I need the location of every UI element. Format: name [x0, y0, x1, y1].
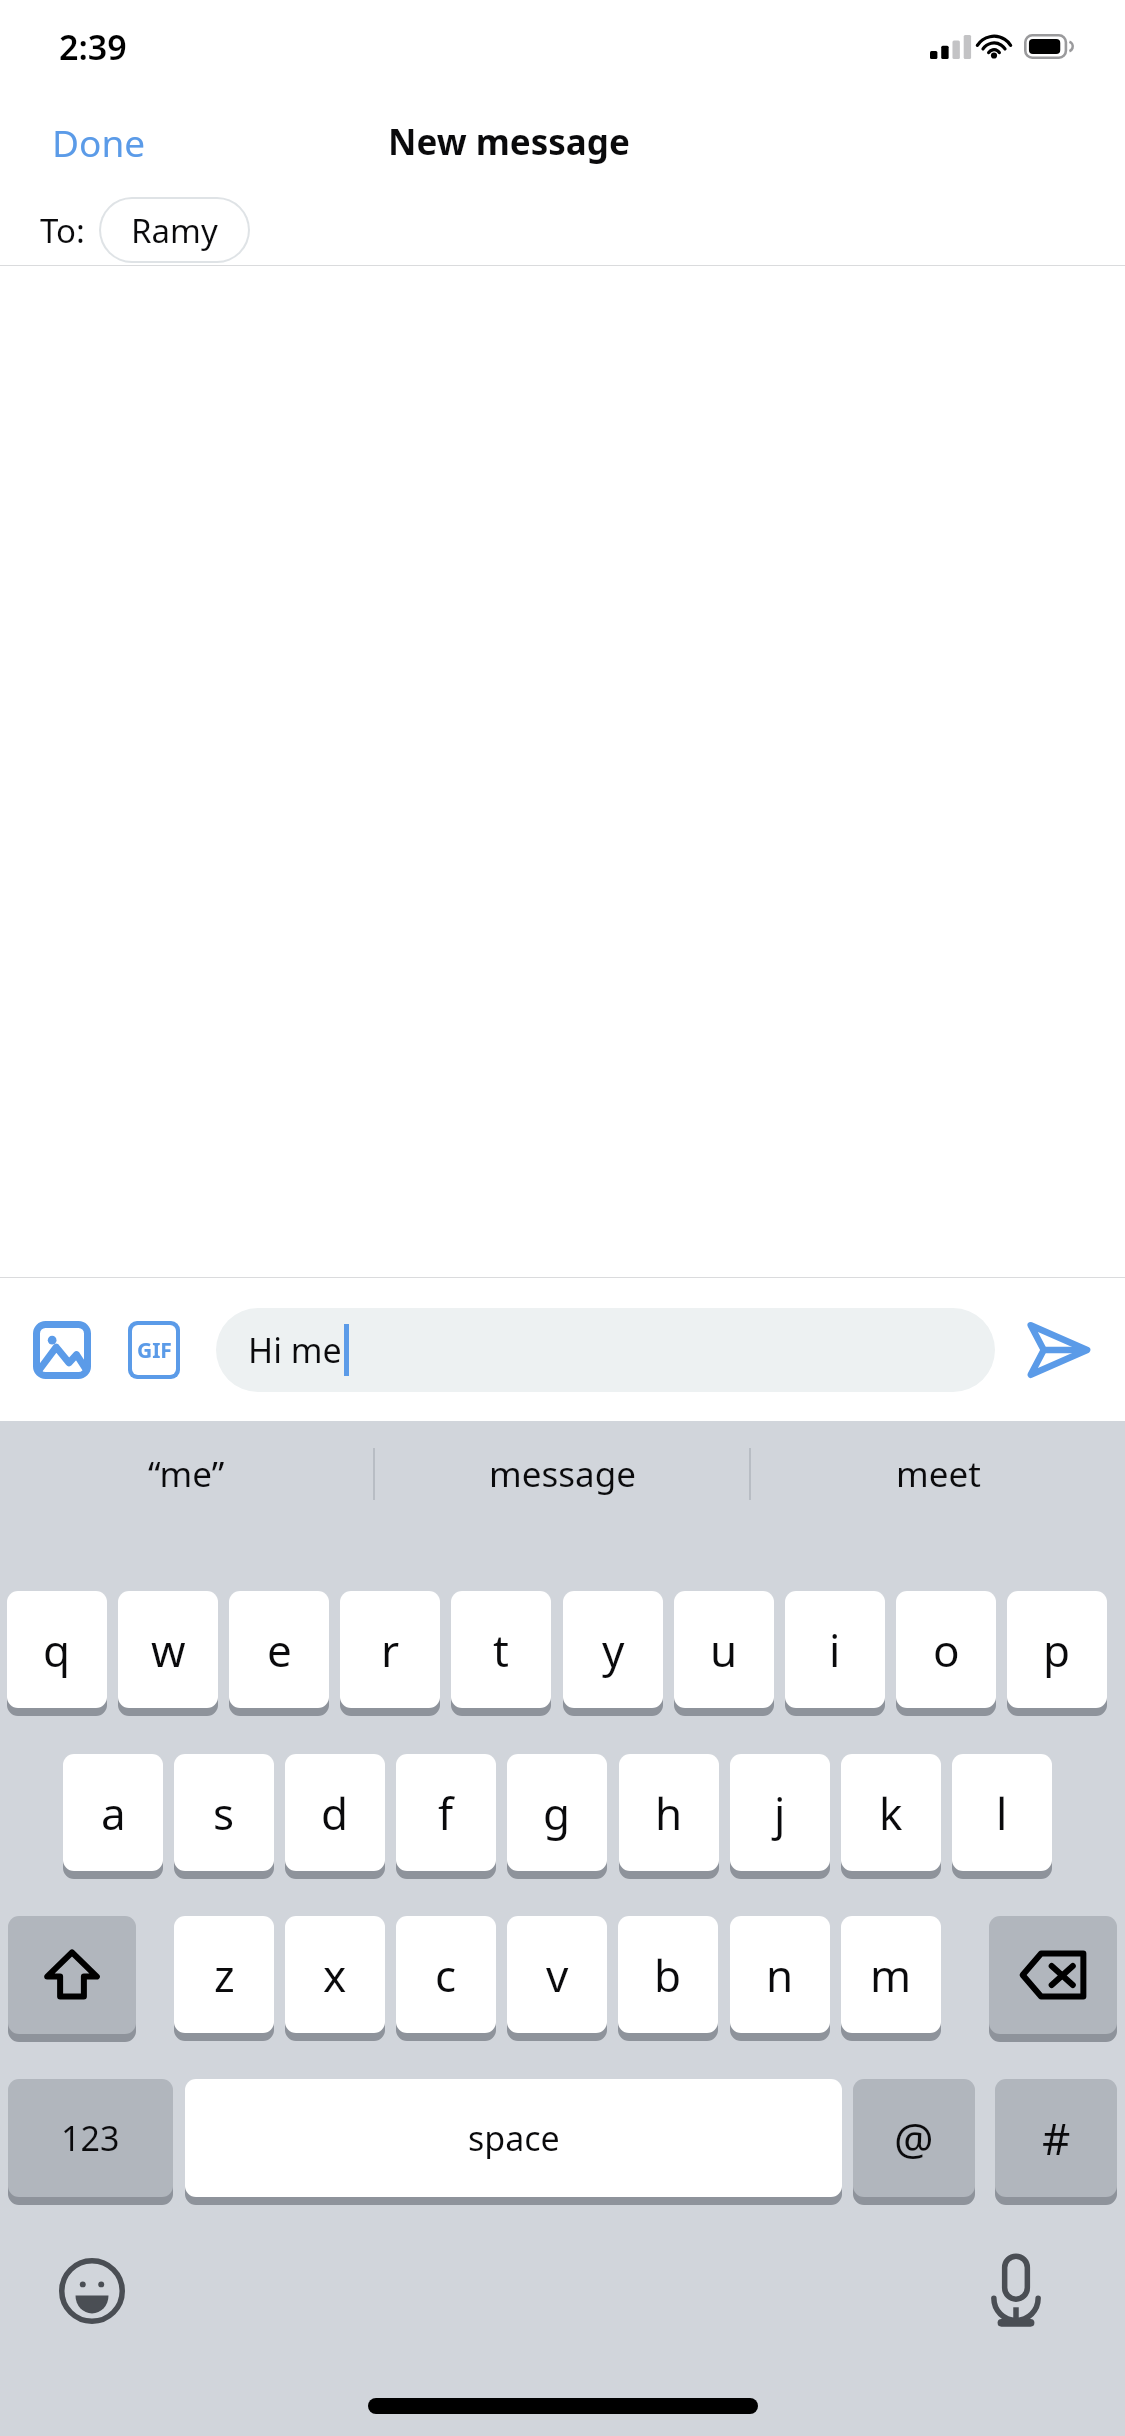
button[interactable]: j: [730, 1754, 830, 1871]
button[interactable]: o: [896, 1591, 996, 1708]
staticText: GIF: [137, 1336, 172, 1365]
button[interactable]: p: [1007, 1591, 1107, 1708]
button[interactable]: #: [995, 2079, 1117, 2197]
button[interactable]: n: [730, 1916, 830, 2033]
button[interactable]: g: [507, 1754, 607, 1871]
staticText: d: [321, 1783, 349, 1843]
button[interactable]: e: [229, 1591, 329, 1708]
button[interactable]: Shift: [8, 1916, 136, 2034]
button[interactable]: k: [841, 1754, 941, 1871]
button[interactable]: Done: [0, 101, 198, 183]
button[interactable]: c: [396, 1916, 496, 2033]
button[interactable]: q: [7, 1591, 107, 1708]
staticText: space: [468, 2115, 560, 2161]
staticText: j: [774, 1783, 786, 1843]
button[interactable]: i: [785, 1591, 885, 1708]
button[interactable]: space: [185, 2079, 842, 2197]
button[interactable]: a: [63, 1754, 163, 1871]
button[interactable]: @: [853, 2079, 975, 2197]
staticText: Hi me: [248, 1327, 342, 1373]
staticText: z: [214, 1945, 235, 2005]
button[interactable]: t: [451, 1591, 551, 1708]
staticText: message: [489, 1450, 636, 1498]
button[interactable]: GIF: [116, 1312, 192, 1388]
staticText: k: [879, 1783, 903, 1843]
staticText: x: [323, 1945, 347, 2005]
button[interactable]: message: [375, 1421, 749, 1526]
staticText: p: [1043, 1620, 1071, 1680]
staticText: v: [546, 1945, 569, 2005]
staticText: New message: [388, 118, 630, 166]
staticText: h: [655, 1783, 683, 1843]
staticText: Ramy: [131, 208, 218, 253]
staticText: r: [381, 1620, 400, 1680]
staticText: l: [996, 1783, 1008, 1843]
staticText: n: [766, 1945, 794, 2005]
button[interactable]: Hi me: [216, 1308, 995, 1392]
button[interactable]: meet: [751, 1421, 1125, 1526]
staticText: #: [1042, 2108, 1071, 2168]
button[interactable]: h: [619, 1754, 719, 1871]
button[interactable]: s: [174, 1754, 274, 1871]
button[interactable]: u: [674, 1591, 774, 1708]
staticText: i: [829, 1620, 841, 1680]
button[interactable]: r: [340, 1591, 440, 1708]
button[interactable]: x: [285, 1916, 385, 2033]
staticText: meet: [896, 1450, 981, 1498]
staticText: q: [43, 1620, 71, 1680]
button[interactable]: y: [563, 1591, 663, 1708]
button[interactable]: Emoji: [44, 2243, 140, 2339]
button[interactable]: w: [118, 1591, 218, 1708]
button[interactable]: m: [841, 1916, 941, 2033]
button[interactable]: z: [174, 1916, 274, 2033]
button[interactable]: v: [507, 1916, 607, 2033]
button[interactable]: d: [285, 1754, 385, 1871]
button[interactable]: 123: [8, 2079, 173, 2197]
staticText: y: [602, 1620, 625, 1680]
button[interactable]: l: [952, 1754, 1052, 1871]
staticText: t: [493, 1620, 509, 1680]
staticText: c: [435, 1945, 457, 2005]
button[interactable]: Add photo: [24, 1312, 100, 1388]
button[interactable]: Backspace: [989, 1916, 1117, 2034]
staticText: o: [933, 1620, 960, 1680]
staticText: a: [101, 1783, 126, 1843]
staticText: Done: [52, 117, 146, 167]
staticText: To:: [40, 208, 85, 253]
button[interactable]: “me”: [0, 1421, 373, 1526]
button[interactable]: Dictation: [968, 2243, 1064, 2339]
staticText: 123: [61, 2115, 120, 2161]
staticText: @: [894, 2108, 934, 2168]
staticText: b: [654, 1945, 682, 2005]
staticText: f: [438, 1783, 454, 1843]
button[interactable]: Ramy: [101, 199, 248, 261]
staticText: e: [267, 1620, 292, 1680]
staticText: g: [543, 1783, 571, 1843]
staticText: u: [710, 1620, 738, 1680]
button[interactable]: Send: [1015, 1307, 1101, 1393]
staticText: 2:39: [59, 24, 127, 70]
staticText: s: [213, 1783, 235, 1843]
staticText: w: [151, 1620, 186, 1680]
staticText: m: [870, 1945, 912, 2005]
staticText: “me”: [148, 1450, 225, 1498]
button[interactable]: b: [618, 1916, 718, 2033]
button[interactable]: f: [396, 1754, 496, 1871]
